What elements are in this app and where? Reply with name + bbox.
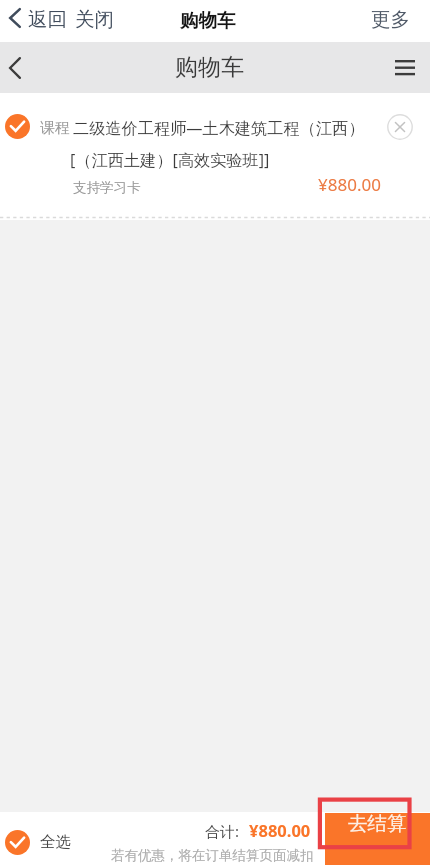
button[interactable]: 返回 bbox=[28, 7, 67, 32]
button[interactable]: Navigate up bbox=[0, 42, 42, 93]
staticText: ¥880.00 bbox=[318, 173, 381, 196]
staticText: 二级造价工程师—土木建筑工程（江西） bbox=[73, 117, 365, 139]
button[interactable]: Menu bbox=[386, 42, 430, 93]
staticText: 购物车 bbox=[175, 53, 244, 82]
button[interactable]: Select item bbox=[5, 114, 30, 139]
staticText: 全选 bbox=[40, 832, 71, 852]
button[interactable]: 更多 bbox=[371, 7, 410, 32]
staticText: 购物车 bbox=[180, 9, 236, 32]
staticText: 合计: bbox=[205, 821, 240, 841]
button[interactable]: Back bbox=[0, 0, 30, 42]
staticText: [（江西土建）[高效实验班]] bbox=[70, 149, 270, 171]
staticText: ¥880.00 bbox=[249, 819, 311, 841]
button[interactable]: Remove item bbox=[386, 113, 413, 140]
button[interactable]: 去结算 bbox=[325, 813, 430, 865]
staticText: 去结算 bbox=[348, 811, 407, 836]
staticText: 课程 bbox=[40, 119, 70, 138]
staticText: 更多 bbox=[371, 7, 410, 32]
staticText: 若有优惠，将在订单结算页面减扣 bbox=[111, 847, 314, 864]
staticText: 关闭 bbox=[75, 7, 114, 32]
staticText: 支持学习卡 bbox=[73, 179, 141, 196]
staticText: 返回 bbox=[28, 7, 67, 32]
button[interactable]: 关闭 bbox=[75, 7, 114, 32]
button[interactable]: 全选 bbox=[0, 828, 83, 857]
